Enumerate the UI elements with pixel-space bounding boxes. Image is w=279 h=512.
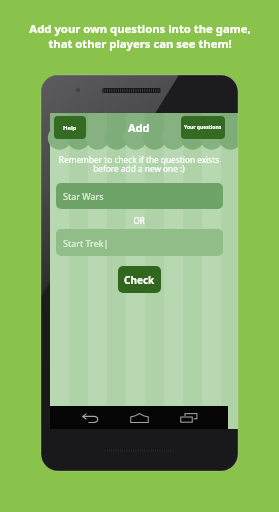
staticText: Star Wars <box>63 190 104 202</box>
staticText: Add your own questions into the game, <box>29 21 251 36</box>
button[interactable]: Recent apps <box>175 406 203 429</box>
staticText: Remember to check if the question exists… <box>50 154 228 174</box>
staticText: that other players can see them! <box>48 36 232 51</box>
button[interactable]: Check <box>118 266 161 293</box>
button[interactable]: Help <box>54 116 86 139</box>
staticText: OR <box>50 215 228 226</box>
button[interactable]: Your questions <box>181 116 225 139</box>
staticText: Your questions <box>184 124 222 131</box>
button[interactable]: Home <box>125 406 153 429</box>
staticText: Add <box>128 120 150 135</box>
staticText: Help <box>63 124 77 132</box>
staticText: Start Trek| <box>63 237 109 249</box>
button[interactable]: Back <box>76 406 104 429</box>
button[interactable]: Start Trek| <box>56 229 223 256</box>
button[interactable]: Star Wars <box>56 183 223 209</box>
staticText: Check <box>124 273 155 287</box>
